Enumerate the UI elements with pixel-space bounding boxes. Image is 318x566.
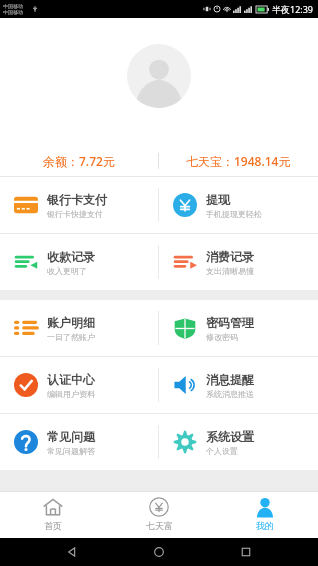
staticText: 一目了然账户 xyxy=(47,332,95,342)
button[interactable]: 银行卡支付 xyxy=(0,177,158,233)
staticText: 提现 xyxy=(206,192,230,207)
button[interactable]: Avatar xyxy=(127,44,191,108)
button[interactable]: 我的 xyxy=(212,492,318,538)
staticText: 首页 xyxy=(44,520,62,531)
button[interactable]: Home xyxy=(144,538,174,566)
staticText: 修改密码 xyxy=(206,332,238,342)
staticText: 常见问题 xyxy=(47,429,95,444)
staticText: 系统设置 xyxy=(206,429,254,444)
button[interactable]: 收款记录 xyxy=(0,234,158,290)
staticText: 手机提现更轻松 xyxy=(206,209,262,219)
staticText: 七天富 xyxy=(146,520,173,531)
button[interactable]: 消费记录 xyxy=(159,234,318,290)
staticText: 收入更明了 xyxy=(47,266,87,276)
staticText: 我的 xyxy=(256,520,274,531)
staticText: 中国移动 xyxy=(3,9,23,15)
button[interactable]: 常见问题 xyxy=(0,414,158,470)
staticText: 支出清晰易懂 xyxy=(206,266,254,276)
staticText: 认证中心 xyxy=(47,372,95,387)
button[interactable]: 消息提醒 xyxy=(159,357,318,413)
button[interactable]: 七天宝：1948.14元 xyxy=(159,145,318,176)
staticText: 账户明细 xyxy=(47,315,95,330)
staticText: 个人设置 xyxy=(206,446,238,456)
staticText: 编辑用户资料 xyxy=(47,389,95,399)
button[interactable]: 系统设置 xyxy=(159,414,318,470)
button[interactable]: 认证中心 xyxy=(0,357,158,413)
staticText: 消息提醒 xyxy=(206,372,254,387)
staticText: 密码管理 xyxy=(206,315,254,330)
staticText: 七天宝：1948.14元 xyxy=(186,153,291,169)
staticText: 常见问题解答 xyxy=(47,446,95,456)
button[interactable]: Recents xyxy=(231,538,261,566)
button[interactable]: Back xyxy=(57,538,87,566)
staticText: 半夜12:39 xyxy=(272,3,314,15)
staticText: 银行卡快捷支付 xyxy=(47,209,103,219)
staticText: 中国移动 xyxy=(3,3,23,9)
staticText: 收款记录 xyxy=(47,249,95,264)
staticText: 余额：7.72元 xyxy=(43,153,115,169)
staticText: 系统消息推送 xyxy=(206,389,254,399)
staticText: 银行卡支付 xyxy=(47,192,107,207)
button[interactable]: 首页 xyxy=(0,492,106,538)
button[interactable]: 提现 xyxy=(159,177,318,233)
button[interactable]: 密码管理 xyxy=(159,300,318,356)
button[interactable]: 七天富 xyxy=(106,492,212,538)
button[interactable]: 账户明细 xyxy=(0,300,158,356)
staticText: 消费记录 xyxy=(206,249,254,264)
button[interactable]: 余额：7.72元 xyxy=(0,145,158,176)
